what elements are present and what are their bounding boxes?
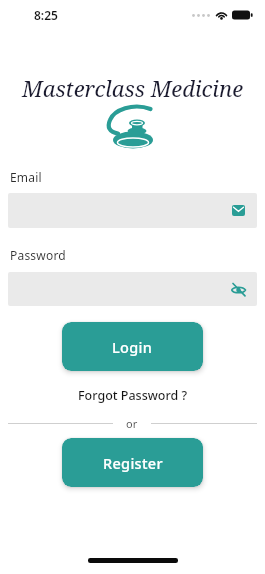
staticText: Email bbox=[10, 169, 42, 185]
button[interactable]: Register bbox=[62, 438, 203, 487]
staticText: Password bbox=[10, 247, 66, 263]
staticText: 8:25 bbox=[34, 7, 58, 23]
staticText: Login bbox=[112, 337, 153, 357]
staticText: Register bbox=[103, 453, 163, 473]
button[interactable] bbox=[8, 272, 257, 306]
button[interactable]: Forgot Password ? bbox=[78, 387, 188, 404]
staticText: Masterclass Medicine bbox=[0, 73, 265, 103]
staticText: or bbox=[126, 416, 138, 431]
button[interactable]: Login bbox=[62, 322, 203, 371]
button[interactable] bbox=[8, 193, 257, 228]
